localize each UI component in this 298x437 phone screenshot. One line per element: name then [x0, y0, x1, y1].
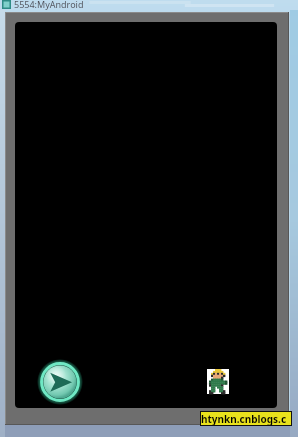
staticText: 5554:MyAndroid [14, 0, 84, 10]
staticText: htynkn.cnblogs.com [201, 412, 291, 425]
button[interactable]: Sprite [207, 369, 229, 394]
button[interactable]: Play [37, 359, 83, 405]
